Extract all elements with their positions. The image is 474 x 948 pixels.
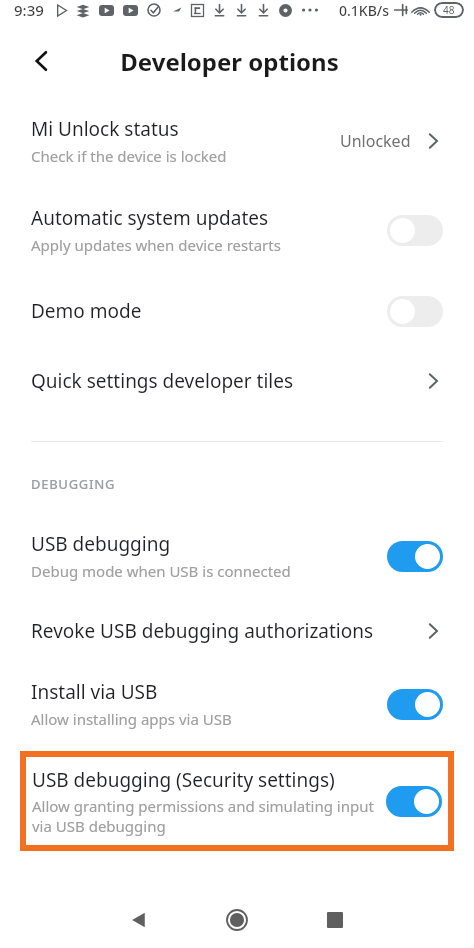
button[interactable]: Toggle off [387,296,443,327]
staticText: Mi Unlock status [31,116,179,142]
button[interactable]: Toggle off [387,215,443,246]
button[interactable]: Automatic system updates [0,184,474,276]
staticText: Demo mode [31,298,142,324]
staticText: Unlocked [340,130,411,152]
button[interactable]: Toggle on [386,786,442,817]
staticText: Check if the device is locked [31,146,227,166]
staticText: Allow installing apps via USB [31,709,232,729]
button[interactable]: Revoke USB debugging authorizations [0,597,474,665]
button[interactable]: Recents [311,896,359,944]
button[interactable]: Back [20,39,64,83]
staticText: Quick settings developer tiles [31,368,294,394]
staticText: Allow granting permissions and simulatin… [32,796,378,836]
staticText: 48 [443,3,455,17]
button[interactable]: Home [213,896,261,944]
staticText: Developer options [120,45,339,78]
staticText: USB debugging [31,531,171,557]
button[interactable]: USB debugging [0,515,474,597]
button[interactable]: Mi Unlock status [0,98,474,184]
button[interactable]: Quick settings developer tiles [0,346,474,416]
staticText: DEBUGGING [31,475,116,493]
button[interactable]: Toggle on [387,541,443,572]
button[interactable]: Toggle on [387,689,443,720]
staticText: Automatic system updates [31,205,269,231]
staticText: 9:39 [14,0,44,20]
button[interactable]: Install via USB [0,665,474,743]
staticText: Debug mode when USB is connected [31,561,291,581]
staticText: Install via USB [31,679,158,705]
button[interactable]: Demo mode [0,276,474,346]
button[interactable]: Back [115,896,163,944]
button[interactable]: USB debugging (Security settings) [20,751,454,851]
staticText: Apply updates when device restarts [31,235,281,255]
staticText: Revoke USB debugging authorizations [31,618,374,644]
staticText: 0.1KB/s [339,1,390,20]
staticText: USB debugging (Security settings) [32,767,335,793]
